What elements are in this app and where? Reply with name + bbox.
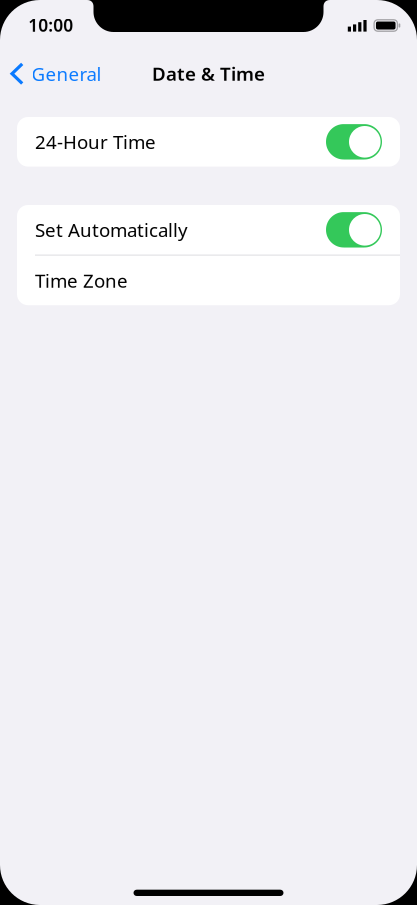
button[interactable]: General [0, 50, 114, 94]
staticText: 24-Hour Time [35, 129, 156, 154]
button[interactable]: Set Automatically [17, 205, 400, 255]
staticText: Date & Time [152, 61, 265, 86]
button[interactable]: Time Zone [17, 256, 400, 305]
staticText: Time Zone [35, 268, 128, 293]
button[interactable]: 24-Hour Time [17, 117, 400, 167]
staticText: General [32, 61, 102, 86]
staticText: 10:00 [28, 13, 73, 36]
staticText: Set Automatically [35, 217, 188, 242]
